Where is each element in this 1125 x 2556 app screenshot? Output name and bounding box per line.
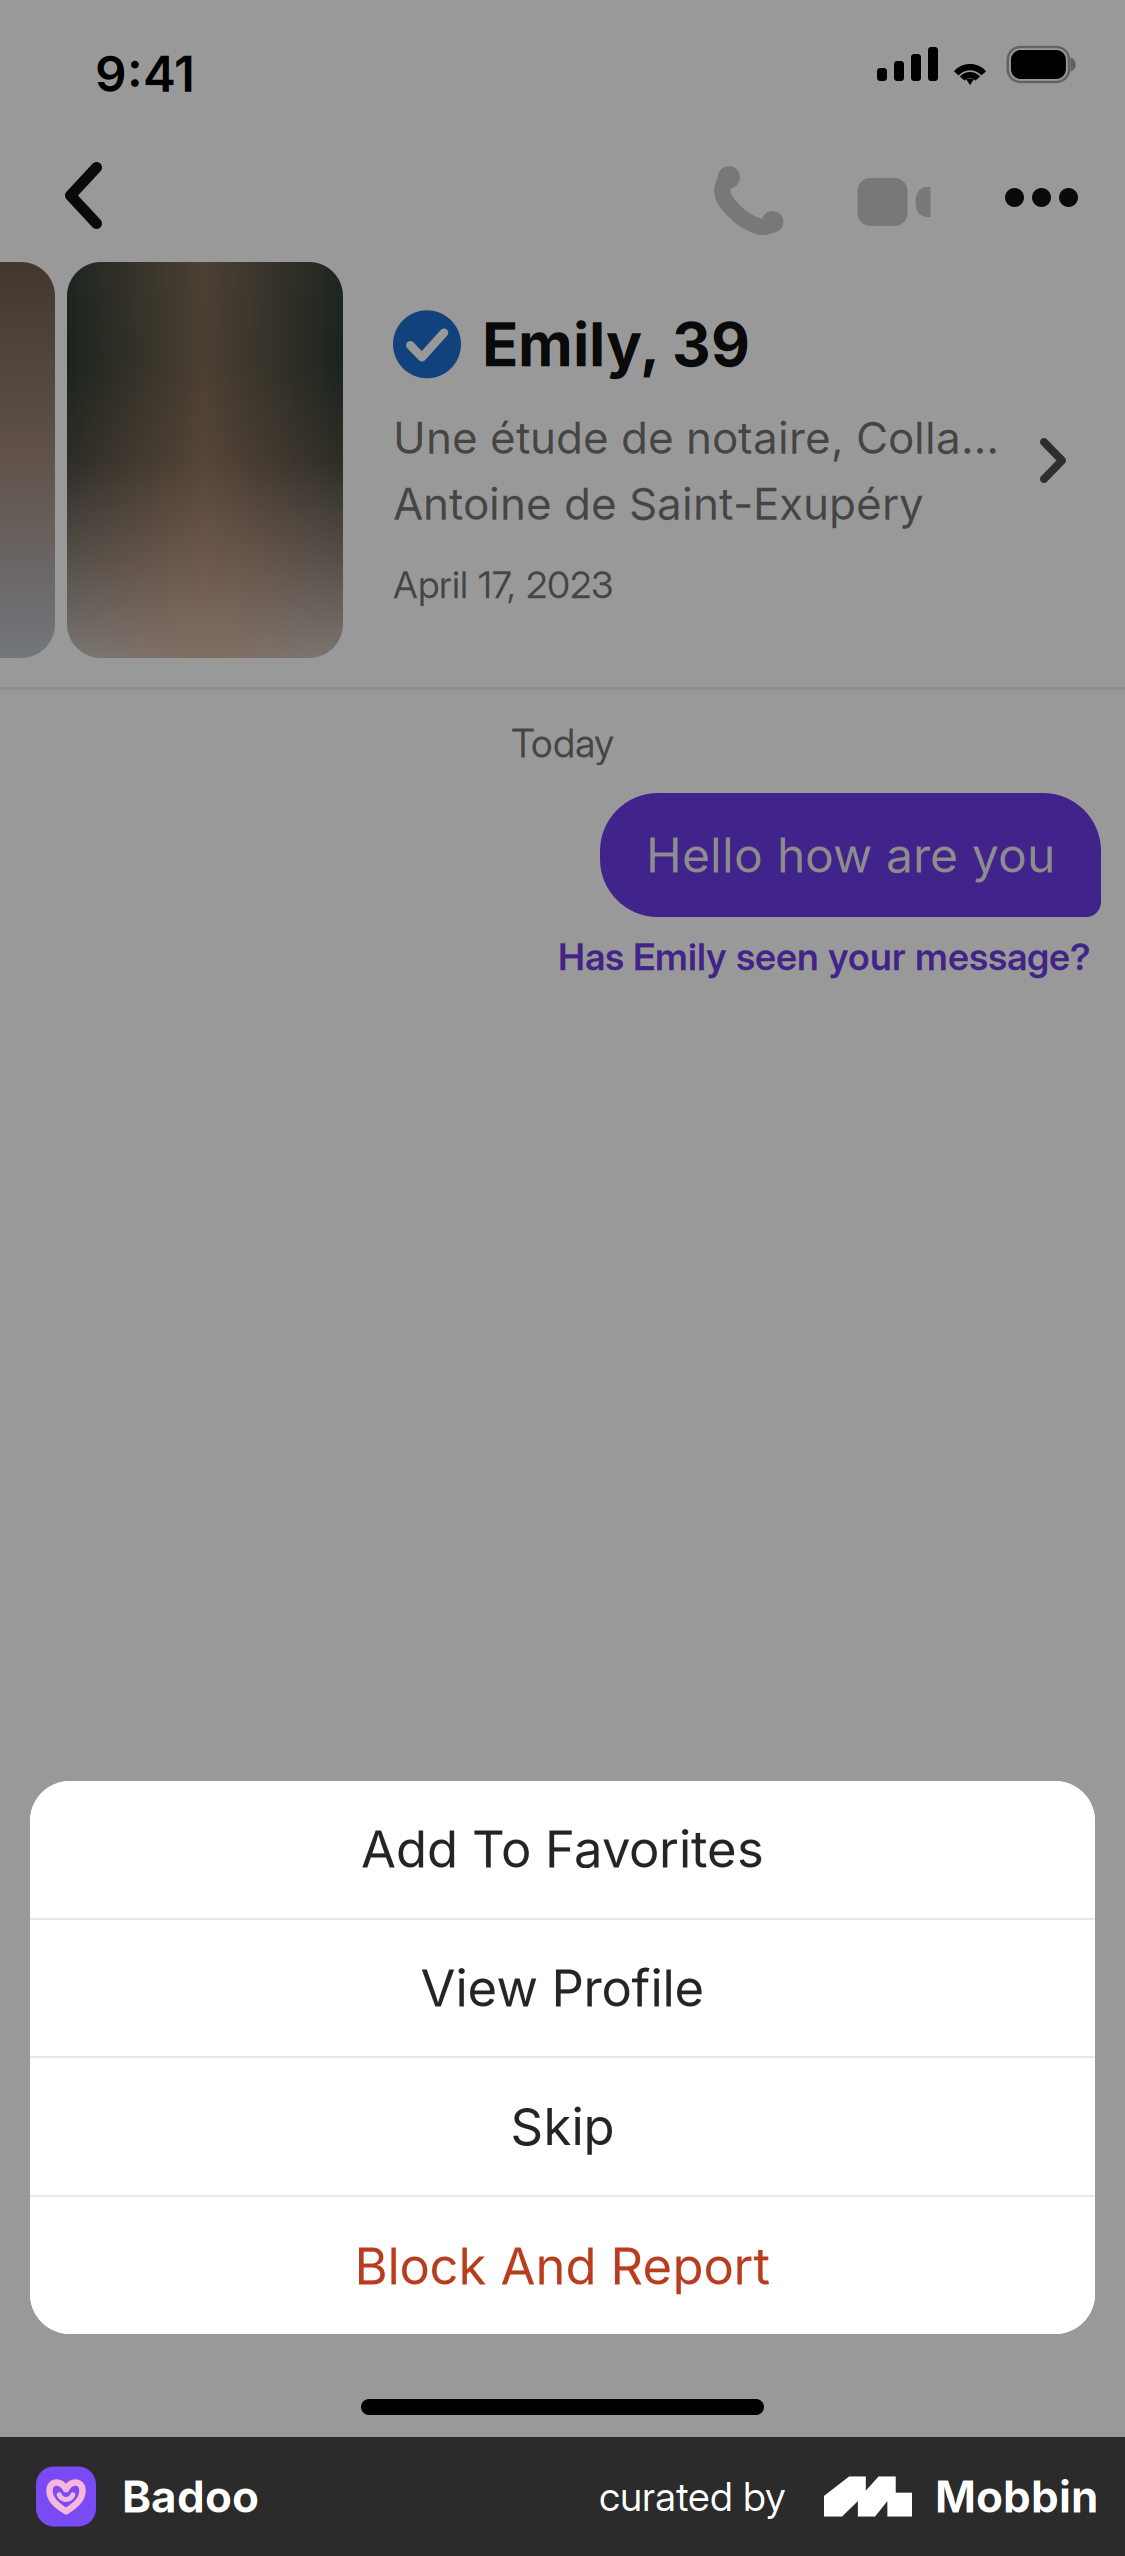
button[interactable]: View Profile: [30, 1920, 1095, 2056]
staticText: Badoo: [122, 2470, 259, 2523]
staticText: Skip: [510, 2096, 614, 2157]
button[interactable]: Skip: [30, 2058, 1095, 2195]
button[interactable]: Add To Favorites: [30, 1780, 1095, 1918]
staticText: Block And Report: [354, 2235, 770, 2297]
staticText: 9:41: [95, 44, 195, 104]
staticText: curated by: [599, 2472, 786, 2521]
button[interactable]: Has Emily seen your message?: [558, 934, 1091, 979]
staticText: Add To Favorites: [361, 1818, 764, 1880]
button[interactable]: Block And Report: [30, 2197, 1095, 2335]
button[interactable]: Voice call: [692, 142, 808, 258]
button[interactable]: Video call: [818, 138, 947, 266]
staticText: Has Emily seen your message?: [558, 934, 1091, 979]
staticText: Une étude de notaire, Colla…: [393, 411, 999, 464]
staticText: April 17, 2023: [393, 562, 614, 607]
staticText: Hello how are you: [646, 826, 1055, 884]
button[interactable]: Back: [38, 135, 129, 256]
staticText: Emily, 39: [482, 308, 750, 381]
staticText: Mobbin: [935, 2470, 1098, 2523]
button[interactable]: More options: [979, 141, 1104, 254]
staticText: View Profile: [420, 1957, 704, 2019]
staticText: Today: [511, 720, 614, 767]
button[interactable]: Emily, 39: [0, 262, 1125, 658]
staticText: Antoine de Saint-Exupéry: [393, 477, 924, 530]
